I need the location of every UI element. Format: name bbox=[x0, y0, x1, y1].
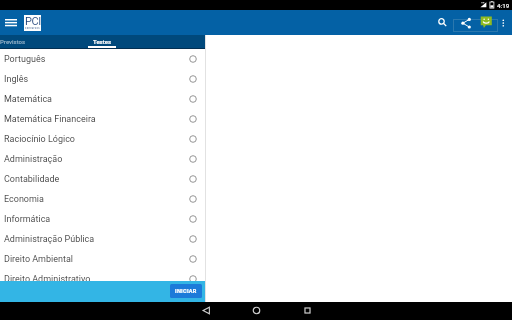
button[interactable]: Inglês bbox=[0, 69, 205, 89]
staticText: PCI bbox=[25, 15, 41, 28]
staticText: Informática bbox=[4, 214, 51, 225]
staticText: Economia bbox=[4, 194, 44, 205]
staticText: Administração bbox=[4, 154, 63, 165]
staticText: Testes bbox=[93, 38, 112, 45]
button[interactable]: Matemática bbox=[0, 89, 205, 109]
button[interactable]: Back bbox=[186, 301, 226, 319]
button[interactable]: Testes bbox=[88, 35, 116, 48]
button[interactable]: Administração Pública bbox=[0, 229, 205, 249]
staticText: Direito Administrativo bbox=[4, 274, 91, 281]
staticText: Matemática bbox=[4, 94, 52, 105]
button[interactable]: Administração bbox=[0, 149, 205, 169]
staticText: Contabilidade bbox=[4, 174, 60, 185]
staticText: 4:19 bbox=[497, 2, 510, 9]
staticText: Inglês bbox=[4, 74, 29, 85]
button[interactable]: More options bbox=[497, 10, 508, 35]
staticText: Português bbox=[4, 54, 46, 65]
staticText: INICIAR bbox=[175, 288, 197, 295]
button[interactable]: Português bbox=[0, 49, 205, 69]
button[interactable]: Direito Ambiental bbox=[0, 249, 205, 269]
staticText: Raciocínio Lógico bbox=[4, 134, 76, 145]
staticText: Direito Ambiental bbox=[4, 254, 74, 265]
button[interactable]: Search bbox=[434, 10, 451, 35]
button[interactable]: Direito Administrativo bbox=[0, 269, 205, 281]
button[interactable]: Open navigation menu bbox=[1, 13, 20, 32]
button[interactable]: Home bbox=[236, 301, 276, 319]
button[interactable]: INICIAR bbox=[170, 284, 202, 298]
staticText: Administração Pública bbox=[4, 234, 95, 245]
button[interactable]: Raciocínio Lógico bbox=[0, 129, 205, 149]
staticText: Matemática Financeira bbox=[4, 114, 96, 125]
button[interactable]: Contabilidade bbox=[0, 169, 205, 189]
button[interactable]: PCI Concursos bbox=[24, 15, 41, 31]
staticText: Previstos bbox=[0, 38, 26, 45]
button[interactable]: Economia bbox=[0, 189, 205, 209]
button[interactable]: Informática bbox=[0, 209, 205, 229]
button[interactable]: Recent apps bbox=[287, 301, 327, 319]
button[interactable]: Share bbox=[456, 10, 474, 35]
button[interactable]: Messaging bbox=[476, 10, 496, 35]
staticText: concursos bbox=[25, 27, 40, 30]
button[interactable]: Matemática Financeira bbox=[0, 109, 205, 129]
button[interactable]: Previstos bbox=[0, 35, 30, 48]
